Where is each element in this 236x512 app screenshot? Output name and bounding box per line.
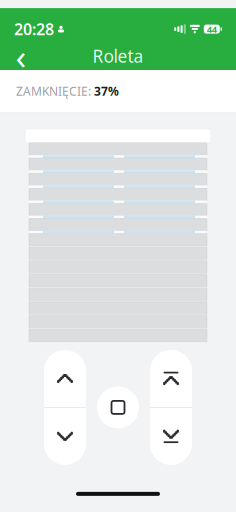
staticText: 37% — [94, 83, 119, 99]
staticText: ZAMKNIĘCIE: — [16, 83, 94, 99]
button[interactable]: Open fully — [150, 350, 192, 407]
button[interactable]: Close blind — [44, 408, 86, 465]
staticText: 44 — [207, 23, 217, 35]
button[interactable]: Open blind — [44, 350, 86, 407]
button[interactable]: Back — [6, 41, 36, 71]
staticText: Roleta — [92, 45, 143, 68]
staticText: ‹ — [15, 33, 26, 79]
button[interactable]: Close fully — [150, 408, 192, 465]
button[interactable]: Stop — [97, 386, 139, 428]
staticText: 20:28 — [14, 18, 54, 40]
